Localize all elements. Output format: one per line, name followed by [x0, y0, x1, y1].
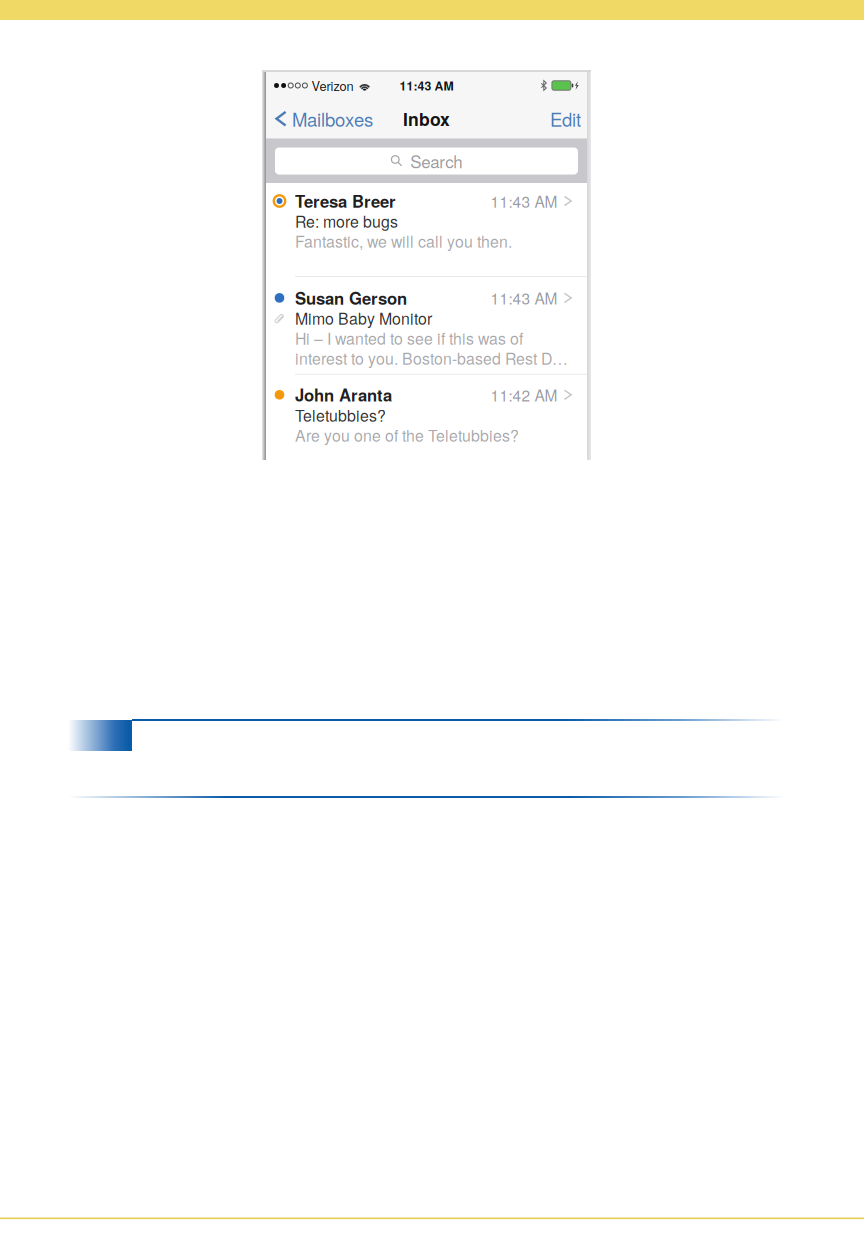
staticText: Susan Gerson [295, 286, 407, 310]
staticText: John Aranta [295, 383, 392, 407]
staticText: Search [410, 149, 462, 173]
button[interactable]: Susan Gerson [266, 277, 587, 374]
button[interactable]: Edit [544, 99, 587, 138]
staticText: interest to you. Boston-based Rest D… [295, 346, 568, 369]
staticText: Teresa Breer [295, 189, 395, 213]
staticText: Are you one of the Teletubbies? [295, 423, 519, 446]
staticText: Fantastic, we will call you then. [295, 230, 512, 252]
staticText: 11:43 AM [491, 190, 558, 212]
button[interactable]: John Aranta [266, 375, 587, 461]
staticText: Edit [550, 105, 581, 132]
staticText: Inbox [403, 106, 450, 131]
staticText: Re: more bugs [295, 210, 398, 232]
staticText: Hi – I wanted to see if this was of [295, 326, 523, 349]
staticText: 11:42 AM [491, 384, 558, 406]
staticText: Teletubbies? [295, 403, 386, 426]
button[interactable]: Teresa Breer [266, 183, 587, 276]
staticText: 11:43 AM [491, 287, 558, 309]
button[interactable]: Search [266, 139, 587, 183]
staticText: Mailboxes [292, 105, 373, 132]
button[interactable]: Mailboxes [266, 99, 379, 138]
staticText: 11:43 AM [399, 77, 453, 94]
staticText: Mimo Baby Monitor [295, 306, 432, 329]
staticText: Verizon [311, 76, 353, 95]
